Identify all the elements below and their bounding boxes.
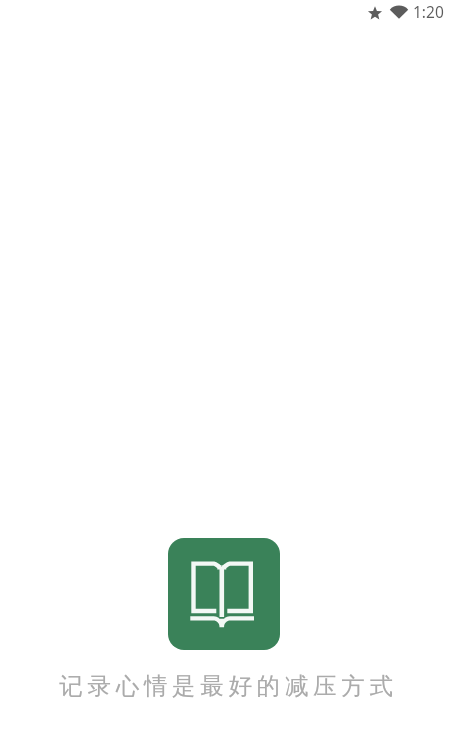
other: Wi-Fi	[388, 2, 410, 22]
button[interactable]: App logo	[168, 538, 280, 650]
staticText: 记录心情是最好的减压方式	[59, 671, 398, 701]
other: Starred	[364, 1, 386, 23]
staticText: 1:20	[413, 1, 444, 22]
